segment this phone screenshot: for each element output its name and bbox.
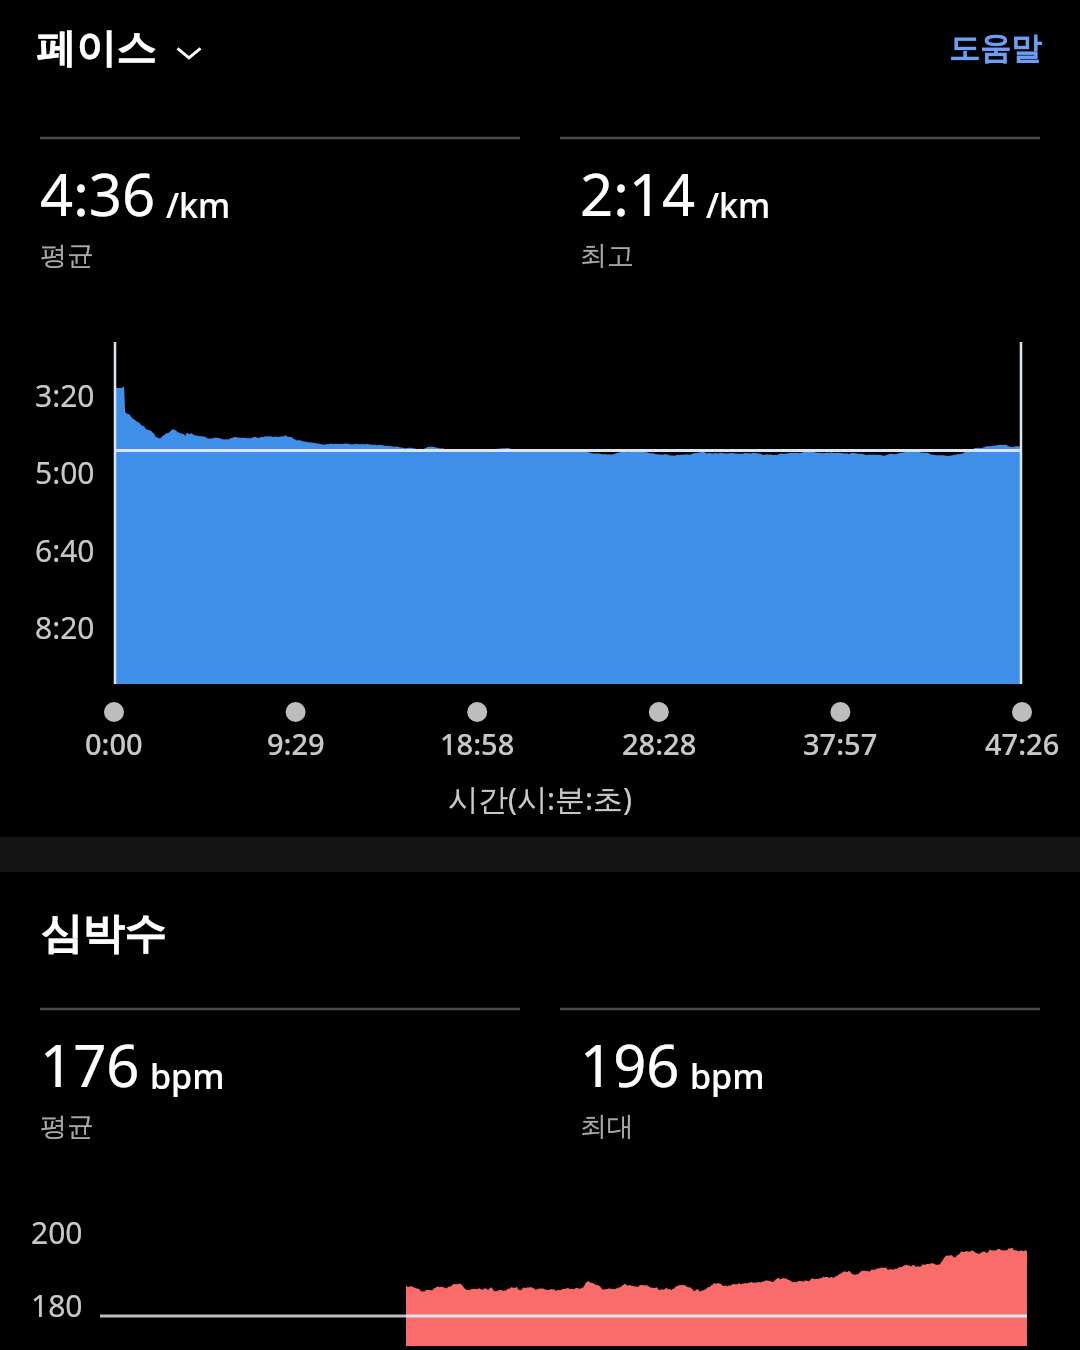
staticText: /km bbox=[706, 182, 771, 228]
staticText: 0:00 bbox=[85, 724, 143, 763]
staticText: 도움말 bbox=[949, 29, 1042, 68]
staticText: 18:58 bbox=[440, 724, 515, 763]
staticText: 페이스 bbox=[36, 23, 156, 73]
staticText: 28:28 bbox=[622, 724, 697, 763]
button[interactable]: 페이스 bbox=[26, 15, 216, 81]
staticText: bpm bbox=[690, 1053, 765, 1099]
staticText: /km bbox=[166, 182, 231, 228]
staticText: 심박수 bbox=[40, 908, 166, 961]
staticText: 최대 bbox=[580, 1110, 634, 1144]
staticText: 2:14 bbox=[580, 154, 696, 233]
staticText: 평균 bbox=[40, 1110, 94, 1144]
staticText: 시간(시:분:초) bbox=[448, 778, 633, 819]
staticText: 최고 bbox=[580, 239, 634, 273]
staticText: 8:20 bbox=[35, 607, 95, 648]
staticText: 176 bbox=[40, 1025, 140, 1104]
staticText: 3:20 bbox=[35, 375, 95, 416]
staticText: 47:26 bbox=[985, 724, 1060, 763]
staticText: 37:57 bbox=[803, 724, 878, 763]
staticText: 5:00 bbox=[35, 452, 95, 493]
staticText: 200 bbox=[31, 1212, 83, 1253]
staticText: 4:36 bbox=[40, 154, 156, 233]
staticText: bpm bbox=[150, 1053, 225, 1099]
staticText: 평균 bbox=[40, 239, 94, 273]
staticText: 196 bbox=[580, 1025, 680, 1104]
staticText: 180 bbox=[31, 1285, 83, 1326]
staticText: 6:40 bbox=[35, 530, 95, 571]
staticText: 9:29 bbox=[267, 724, 325, 763]
button[interactable]: 도움말 bbox=[939, 19, 1052, 78]
